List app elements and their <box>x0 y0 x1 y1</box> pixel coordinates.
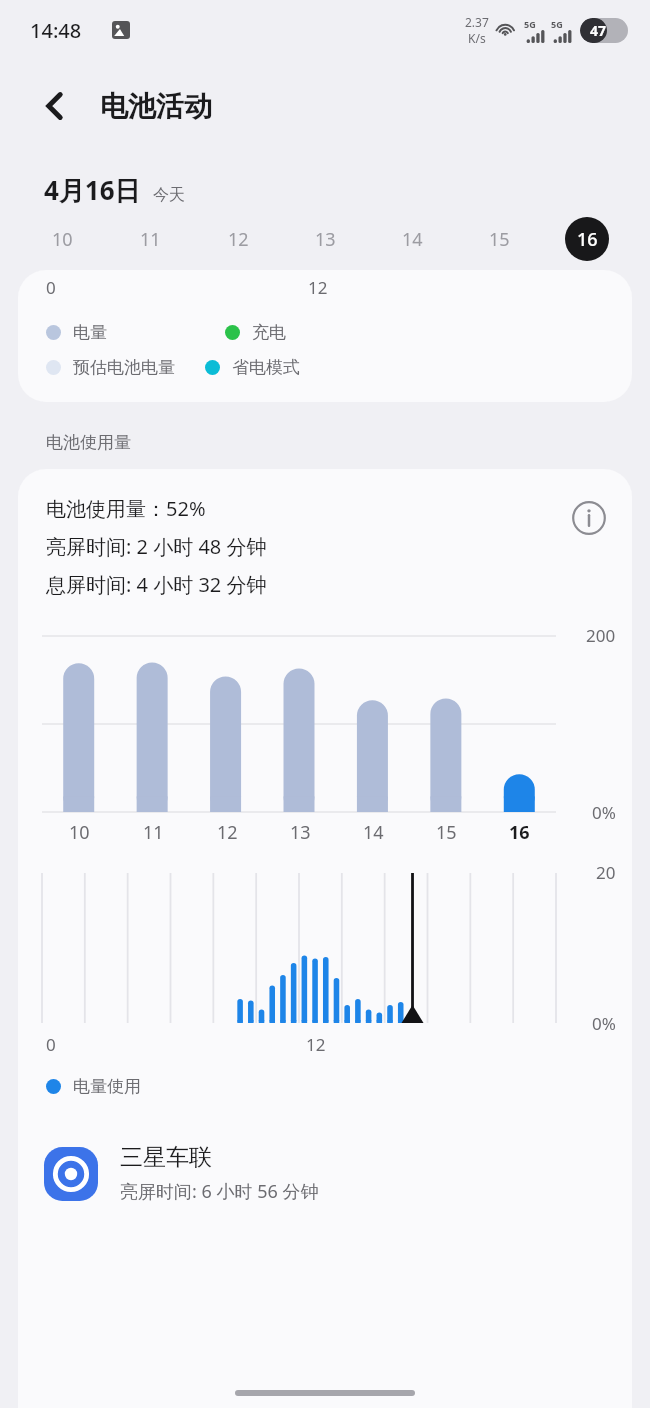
staticText: 亮屏时间: 2 小时 48 分钟 <box>46 533 267 560</box>
staticText: 0 <box>46 276 56 299</box>
staticText: 12 <box>228 227 249 252</box>
button[interactable]: 13 <box>282 208 369 270</box>
staticText: 0 <box>46 1033 56 1056</box>
staticText: 12 <box>308 276 328 299</box>
button[interactable]: 10 <box>18 208 106 270</box>
staticText: 息屏时间: 4 小时 32 分钟 <box>46 571 267 598</box>
button[interactable]: Back <box>28 79 82 133</box>
staticText: 13 <box>290 820 311 845</box>
staticText: 11 <box>143 820 164 845</box>
staticText: 14:48 <box>30 17 82 44</box>
staticText: 11 <box>140 227 161 252</box>
button[interactable]: Info <box>566 495 612 541</box>
staticText: 预估电池电量 <box>73 357 175 378</box>
staticText: 16 <box>577 227 598 252</box>
staticText: 充电 <box>252 322 286 343</box>
button[interactable]: 12 <box>194 208 282 270</box>
button[interactable]: 0 <box>18 270 632 402</box>
staticText: 2.37 <box>465 14 489 30</box>
staticText: 13 <box>315 227 336 252</box>
staticText: 15 <box>436 820 457 845</box>
staticText: 今天 <box>153 185 185 205</box>
staticText: 三星车联 <box>120 1143 212 1172</box>
staticText: K/s <box>468 30 486 46</box>
staticText: 电量 <box>73 322 107 343</box>
staticText: 电池使用量：52% <box>46 495 206 522</box>
staticText: 亮屏时间: 6 小时 56 分钟 <box>120 1179 319 1204</box>
button[interactable]: 三星车联 <box>18 1143 632 1204</box>
staticText: 0% <box>592 1012 616 1035</box>
staticText: 20 <box>596 861 616 884</box>
staticText: 14 <box>363 820 384 845</box>
staticText: 12 <box>217 820 238 845</box>
button[interactable]: 15 <box>456 208 543 270</box>
staticText: 4月16日 <box>44 172 141 208</box>
staticText: 14 <box>402 227 423 252</box>
staticText: 5G <box>551 18 563 30</box>
button[interactable]: 16 <box>543 208 630 270</box>
button[interactable]: 14 <box>369 208 456 270</box>
staticText: 200 <box>586 624 616 647</box>
button[interactable]: 11 <box>106 208 194 270</box>
staticText: 10 <box>52 227 73 252</box>
staticText: 15 <box>489 227 510 252</box>
staticText: 5G <box>524 18 536 30</box>
staticText: 电量使用 <box>73 1076 141 1097</box>
staticText: 电池活动 <box>100 89 212 124</box>
staticText: 0% <box>592 801 616 824</box>
staticText: 电池使用量 <box>46 432 131 453</box>
staticText: 省电模式 <box>232 357 300 378</box>
staticText: 16 <box>509 820 530 845</box>
staticText: 12 <box>306 1033 326 1056</box>
staticText: 47 <box>590 21 607 40</box>
staticText: 10 <box>69 820 90 845</box>
